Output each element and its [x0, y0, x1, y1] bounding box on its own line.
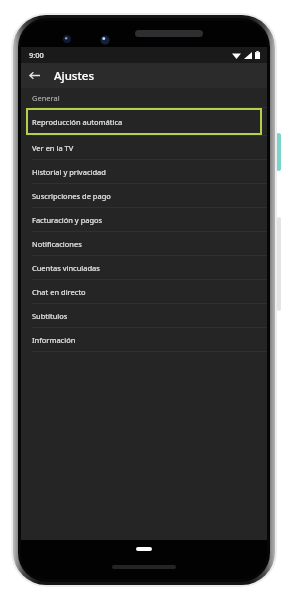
button[interactable]: Suscripciones de pago	[21, 184, 267, 207]
button[interactable]: Chat en directo	[21, 280, 267, 303]
staticText: Cuentas vinculadas	[32, 263, 100, 273]
staticText: Chat en directo	[32, 287, 86, 297]
staticText: Suscripciones de pago	[32, 191, 111, 201]
button[interactable]: Información	[21, 328, 267, 351]
button[interactable]: Facturación y pagos	[21, 208, 267, 231]
staticText: General	[32, 93, 60, 103]
button[interactable]: Subtítulos	[21, 304, 267, 327]
staticText: 9:00	[29, 50, 44, 60]
button[interactable]: Atrás	[25, 66, 44, 85]
button[interactable]: Ver en la TV	[21, 136, 267, 159]
staticText: Subtítulos	[32, 311, 68, 321]
staticText: Ver en la TV	[32, 143, 74, 153]
button[interactable]: Notificaciones	[21, 232, 267, 255]
button[interactable]: Cuentas vinculadas	[21, 256, 267, 279]
staticText: Ajustes	[54, 68, 95, 84]
staticText: Información	[32, 335, 76, 345]
staticText: Historial y privacidad	[32, 167, 106, 177]
button[interactable]: Reproducción automática	[26, 108, 262, 135]
button[interactable]: Historial y privacidad	[21, 160, 267, 183]
staticText: Facturación y pagos	[32, 215, 103, 225]
staticText: Notificaciones	[32, 239, 82, 249]
staticText: Reproducción automática	[32, 117, 123, 127]
